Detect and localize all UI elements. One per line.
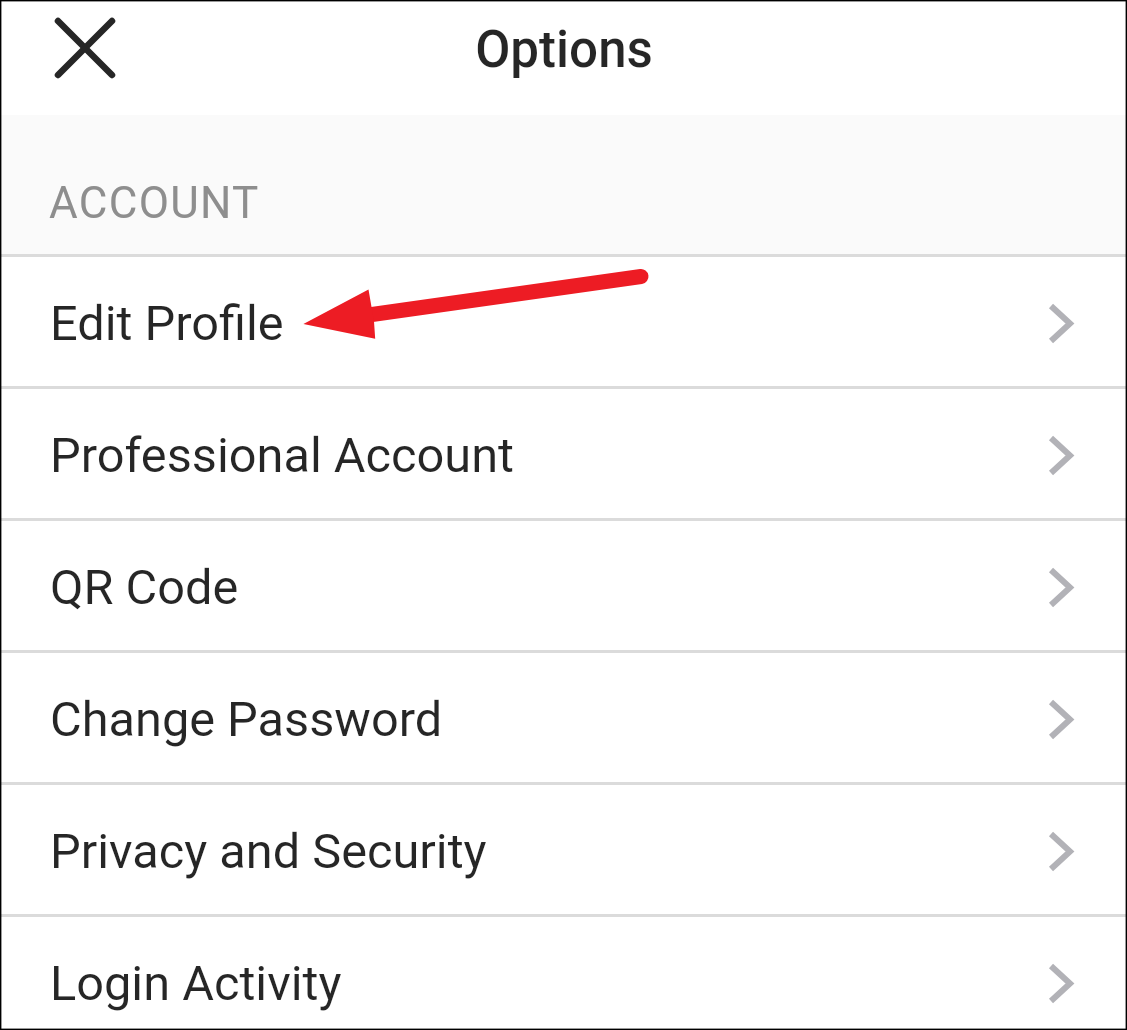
staticText: ACCOUNT <box>49 177 260 229</box>
button[interactable]: QR Code <box>0 521 1127 650</box>
button[interactable]: Professional Account <box>0 389 1127 518</box>
button[interactable]: Change Password <box>0 653 1127 782</box>
button[interactable]: Login Activity <box>0 917 1127 1030</box>
button[interactable]: Edit Profile <box>0 257 1127 386</box>
staticText: Privacy and Security <box>50 823 487 880</box>
staticText: Change Password <box>50 691 443 748</box>
button[interactable]: Privacy and Security <box>0 785 1127 914</box>
button[interactable]: Close <box>25 0 145 96</box>
staticText: Professional Account <box>50 427 514 484</box>
staticText: QR Code <box>50 559 239 616</box>
staticText: Options <box>475 20 653 80</box>
staticText: Login Activity <box>50 955 342 1012</box>
staticText: Edit Profile <box>50 295 284 352</box>
